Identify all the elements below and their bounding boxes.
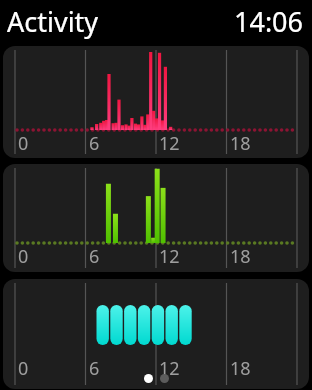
button[interactable]: 14:06 (234, 3, 304, 40)
staticText: 12 (159, 131, 180, 156)
button[interactable]: Page 2 (160, 374, 169, 383)
staticText: 12 (159, 244, 180, 269)
staticText: 14:06 (234, 3, 304, 40)
staticText: 6 (89, 131, 100, 156)
staticText: 18 (230, 244, 251, 269)
staticText: Activity (7, 3, 99, 40)
staticText: 0 (18, 244, 29, 269)
staticText: 6 (89, 356, 100, 381)
staticText: 18 (230, 131, 251, 156)
staticText: 6 (89, 244, 100, 269)
button[interactable]: Page 1 (144, 374, 153, 383)
button[interactable]: Activity (7, 3, 99, 40)
staticText: 0 (18, 356, 29, 381)
staticText: 12 (159, 356, 180, 381)
staticText: 18 (230, 356, 251, 381)
staticText: 0 (18, 131, 29, 156)
